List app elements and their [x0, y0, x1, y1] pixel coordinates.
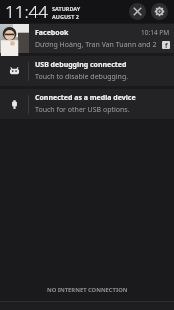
staticText: f — [165, 41, 168, 49]
staticText: Connected as a media device — [35, 93, 136, 103]
staticText: NO INTERNET CONNECTION — [47, 286, 128, 294]
staticText: Touch for other USB options. — [35, 105, 130, 115]
staticText: 10:14 PM — [141, 28, 170, 37]
button[interactable]: USB debugging connected — [0, 56, 174, 86]
button[interactable]: Settings — [151, 3, 168, 20]
staticText: Dương Hoàng, Tran Van Tuann and 2 others — [35, 40, 160, 50]
button[interactable]: Clear all notifications — [129, 3, 146, 20]
staticText: SATURDAY — [52, 5, 81, 12]
button[interactable]: NO INTERNET CONNECTION — [0, 279, 174, 301]
button[interactable]: Connected as a media device — [0, 89, 174, 119]
staticText: Facebook — [35, 28, 141, 38]
staticText: USB debugging connected — [35, 60, 127, 70]
staticText: AUGUST 2 — [52, 13, 79, 20]
staticText: Touch to disable debugging. — [35, 72, 129, 82]
staticText: 11:44 — [5, 0, 48, 23]
button[interactable]: Facebook — [0, 24, 174, 53]
